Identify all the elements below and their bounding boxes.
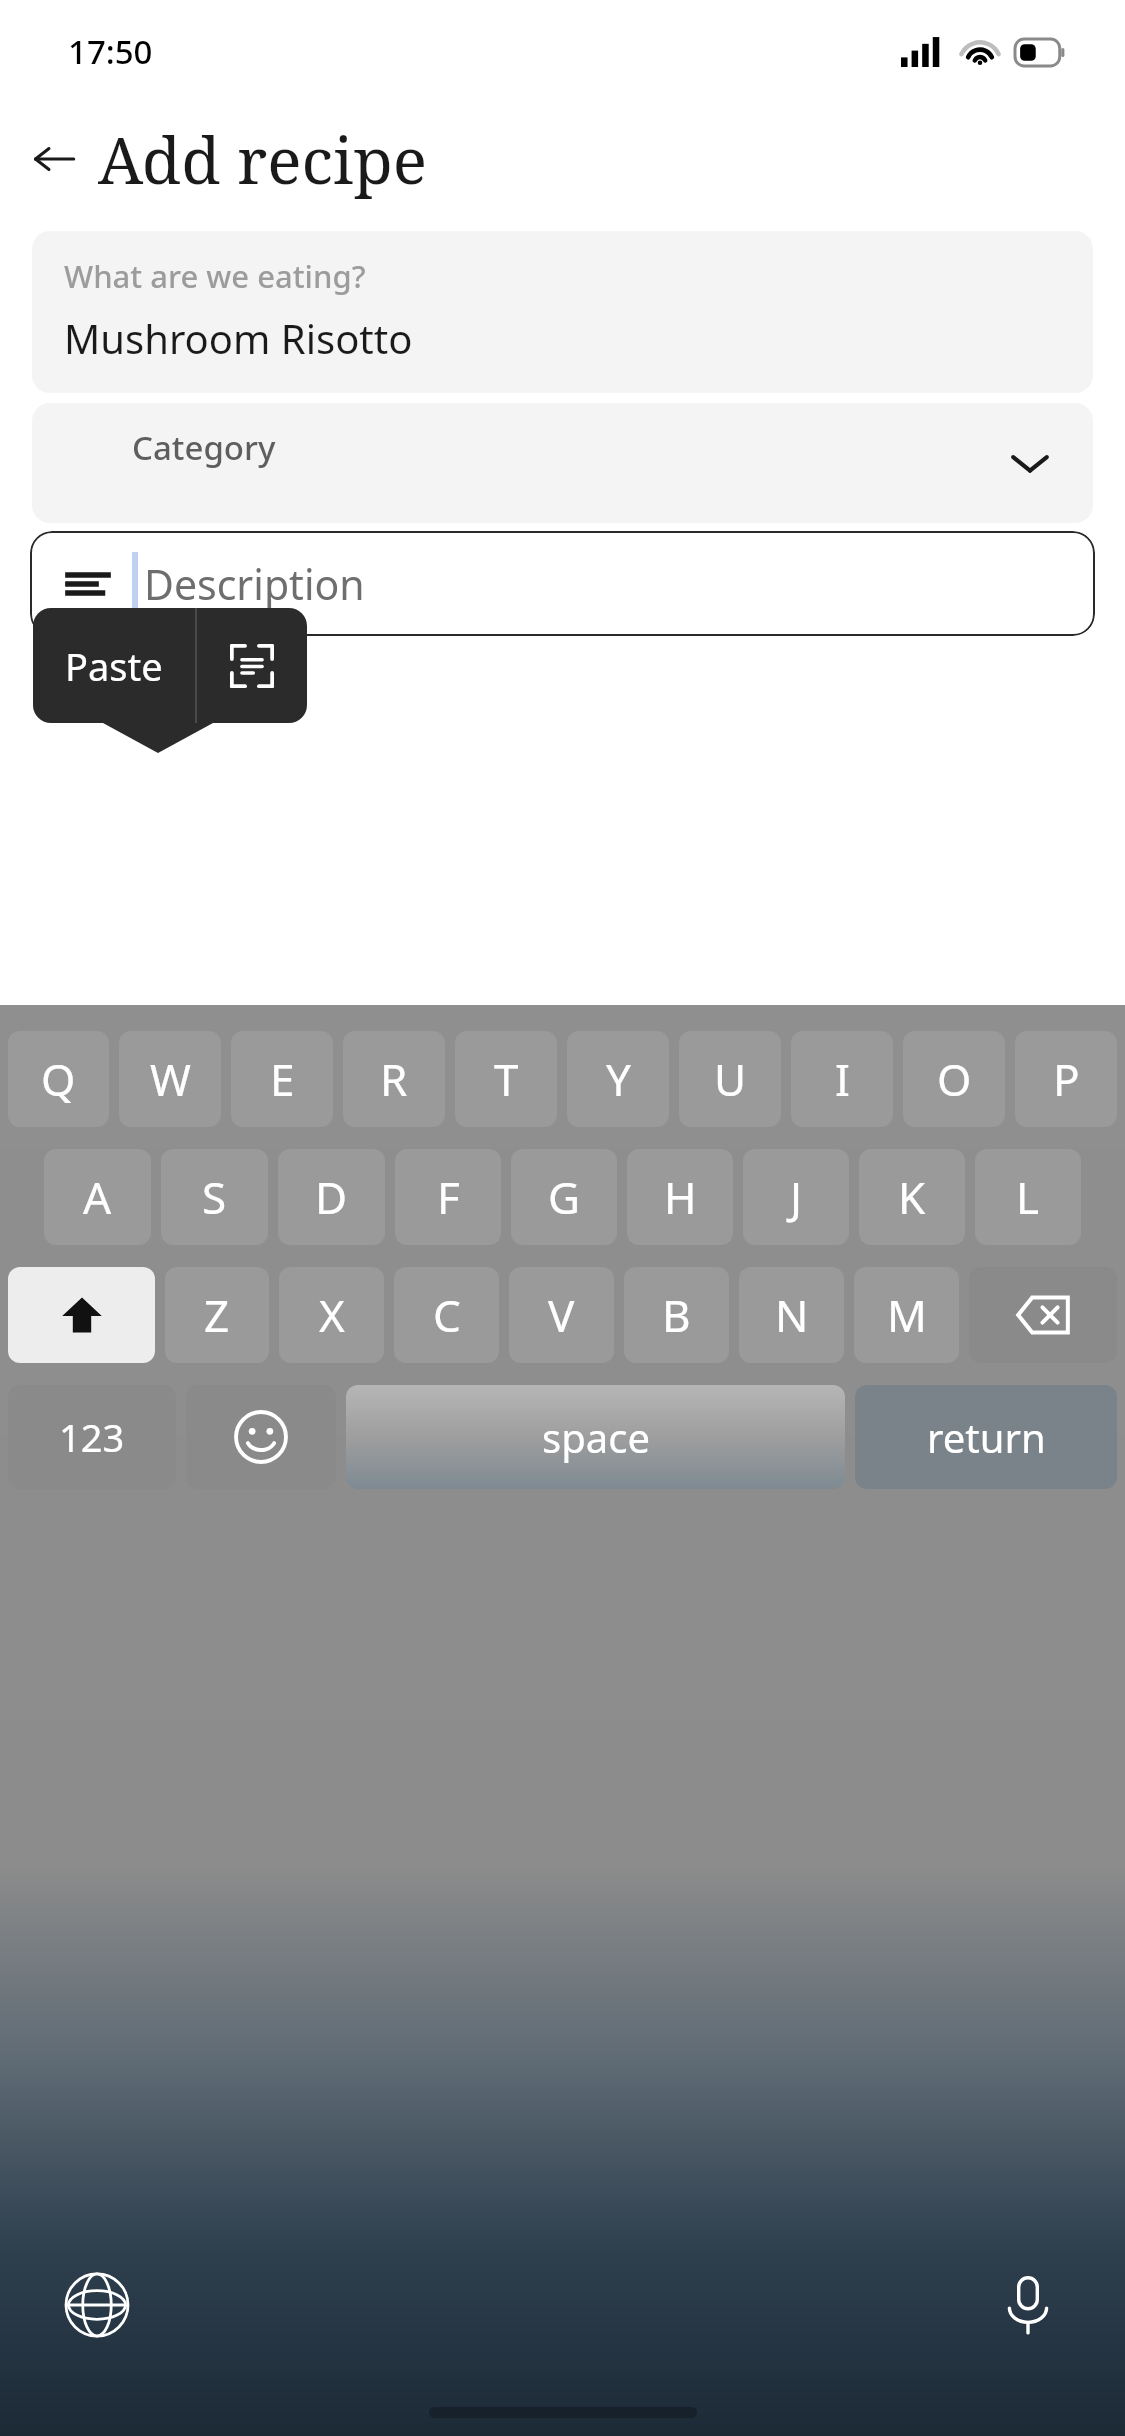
staticText: J <box>790 1167 803 1227</box>
button[interactable]: X <box>279 1267 384 1363</box>
button[interactable]: G <box>511 1149 617 1245</box>
staticText: B <box>662 1285 691 1345</box>
button[interactable]: Shift <box>8 1267 155 1363</box>
staticText: return <box>927 1410 1046 1464</box>
staticText: F <box>437 1167 460 1227</box>
button[interactable]: R <box>343 1031 445 1127</box>
staticText: P <box>1053 1049 1080 1109</box>
button[interactable]: C <box>394 1267 499 1363</box>
staticText: What are we eating? <box>64 255 366 297</box>
staticText: E <box>270 1049 295 1109</box>
button[interactable]: Description <box>30 531 1095 636</box>
staticText: Z <box>204 1285 230 1345</box>
button[interactable]: P <box>1015 1031 1117 1127</box>
button[interactable]: Q <box>8 1031 109 1127</box>
button[interactable]: 123 <box>8 1385 176 1489</box>
button[interactable]: Y <box>567 1031 669 1127</box>
button[interactable]: Emoji <box>186 1385 336 1489</box>
button[interactable]: What are we eating? <box>32 231 1093 393</box>
staticText: Mushroom Risotto <box>64 311 413 365</box>
button[interactable]: A <box>44 1149 151 1245</box>
button[interactable]: V <box>509 1267 614 1363</box>
staticText: Description <box>144 556 365 612</box>
button[interactable]: Category <box>32 403 1093 523</box>
staticText: L <box>1016 1167 1040 1227</box>
button[interactable]: Backspace <box>969 1267 1117 1363</box>
button[interactable]: Dictate <box>983 2260 1073 2350</box>
button[interactable]: H <box>627 1149 733 1245</box>
staticText: Q <box>41 1049 76 1109</box>
staticText: A <box>83 1167 112 1227</box>
staticText: G <box>548 1167 581 1227</box>
staticText: M <box>887 1285 927 1345</box>
staticText: T <box>494 1049 519 1109</box>
button[interactable]: Z <box>165 1267 269 1363</box>
staticText: H <box>664 1167 697 1227</box>
button[interactable]: I <box>791 1031 893 1127</box>
button[interactable]: U <box>679 1031 781 1127</box>
staticText: O <box>937 1049 972 1109</box>
button[interactable]: Back <box>24 129 84 189</box>
button[interactable]: F <box>395 1149 501 1245</box>
button[interactable]: M <box>854 1267 959 1363</box>
staticText: N <box>775 1285 809 1345</box>
staticText: Add recipe <box>98 116 427 203</box>
button[interactable]: J <box>743 1149 849 1245</box>
staticText: U <box>714 1049 747 1109</box>
staticText: R <box>380 1049 408 1109</box>
button[interactable]: Scan text <box>197 608 307 723</box>
staticText: K <box>898 1167 926 1227</box>
button[interactable]: N <box>739 1267 844 1363</box>
staticText: S <box>202 1167 227 1227</box>
button[interactable]: L <box>975 1149 1081 1245</box>
button[interactable]: Paste <box>33 608 195 723</box>
button[interactable]: W <box>119 1031 221 1127</box>
button[interactable]: space <box>346 1385 845 1489</box>
button[interactable]: B <box>624 1267 729 1363</box>
button[interactable]: K <box>859 1149 965 1245</box>
staticText: X <box>319 1285 345 1345</box>
button[interactable]: return <box>855 1385 1117 1489</box>
button[interactable]: T <box>455 1031 557 1127</box>
staticText: Category <box>132 425 276 470</box>
staticText: V <box>548 1285 575 1345</box>
staticText: W <box>150 1049 191 1109</box>
button[interactable]: E <box>231 1031 333 1127</box>
staticText: Y <box>606 1049 631 1109</box>
staticText: D <box>315 1167 348 1227</box>
staticText: space <box>542 1410 650 1464</box>
staticText: I <box>835 1049 850 1109</box>
button[interactable]: O <box>903 1031 1005 1127</box>
staticText: Paste <box>65 640 163 692</box>
button[interactable]: D <box>278 1149 385 1245</box>
staticText: 17:50 <box>68 29 153 74</box>
button[interactable]: Change keyboard <box>52 2260 142 2350</box>
staticText: C <box>433 1285 461 1345</box>
button[interactable]: S <box>161 1149 268 1245</box>
staticText: 123 <box>59 1411 125 1463</box>
